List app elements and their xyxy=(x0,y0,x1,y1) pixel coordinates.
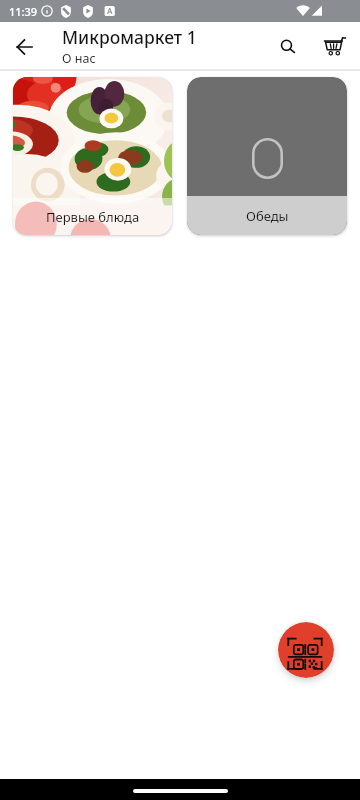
staticText: О нас xyxy=(62,50,96,67)
staticText: Обеды xyxy=(246,207,289,225)
staticText: 11:39 xyxy=(9,4,38,19)
staticText: Микромаркет 1 xyxy=(62,25,197,49)
button[interactable]: Cart xyxy=(310,25,354,69)
button[interactable]: Back xyxy=(1,23,49,71)
staticText: Первые блюда xyxy=(46,208,140,226)
button[interactable]: Обеды xyxy=(187,77,347,235)
button[interactable]: Scan QR code xyxy=(278,622,334,678)
button[interactable]: Search xyxy=(266,25,310,69)
button[interactable]: Первые блюда xyxy=(13,77,172,235)
